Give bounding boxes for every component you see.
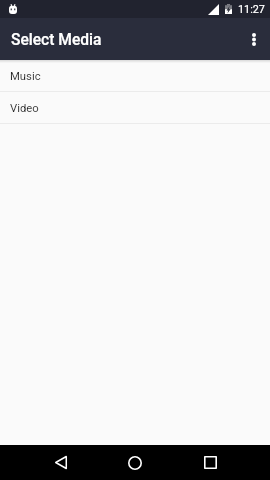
staticText: 11:27 bbox=[238, 3, 265, 16]
button[interactable]: Music bbox=[0, 60, 270, 91]
button[interactable]: Home bbox=[115, 445, 155, 480]
staticText: Music bbox=[10, 70, 41, 83]
button[interactable]: Recent apps bbox=[190, 445, 230, 480]
staticText: Select Media bbox=[11, 31, 102, 49]
button[interactable]: More options bbox=[237, 18, 270, 60]
staticText: Video bbox=[10, 102, 39, 115]
button[interactable]: Video bbox=[0, 92, 270, 123]
button[interactable]: Back bbox=[41, 445, 81, 480]
